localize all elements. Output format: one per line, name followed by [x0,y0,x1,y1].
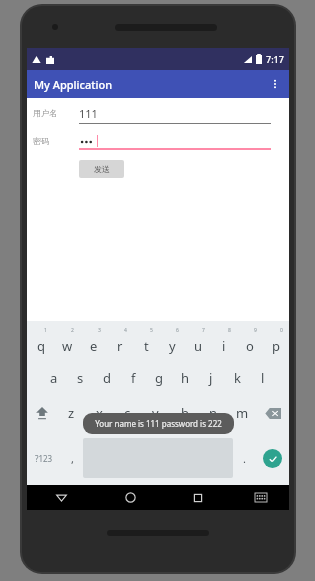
button[interactable]: c [113,395,141,431]
button[interactable]: v [141,395,170,431]
staticText: y [169,337,176,355]
staticText: p [272,337,280,355]
button[interactable]: 6 [159,327,185,361]
button[interactable]: Home [96,485,164,510]
button[interactable]: 7 [185,327,211,361]
button[interactable]: 1 [27,327,54,361]
staticText: 发送 [94,164,110,174]
staticText: s [77,369,84,387]
staticText: 6 [176,327,179,334]
button[interactable]: b [170,395,199,431]
staticText: w [62,337,73,355]
button[interactable]: g [146,361,172,395]
button[interactable]: 111 [79,106,271,124]
staticText: My Application [34,77,113,92]
staticText: q [37,337,45,355]
button[interactable]: 发送 [79,160,124,178]
staticText: 8 [228,327,231,334]
staticText: l [261,369,265,387]
button[interactable]: f [120,361,146,395]
staticText: 3 [98,327,101,334]
button[interactable]: ?123 [27,431,61,485]
staticText: v [152,404,159,422]
staticText: a [50,369,58,387]
button[interactable]: l [250,361,276,395]
staticText: 用户名 [33,108,79,118]
staticText: b [181,404,189,422]
staticText: g [155,369,163,387]
staticText: z [68,404,75,422]
staticText: j [209,369,213,387]
staticText: x [96,404,103,422]
button[interactable]: x [85,395,113,431]
staticText: n [209,404,218,422]
staticText: ?123 [35,453,53,464]
staticText: , [71,451,74,466]
button[interactable]: Back [27,485,96,510]
button[interactable]: a [40,361,67,395]
button[interactable]: Backspace [257,395,289,431]
staticText: m [236,404,249,422]
staticText: . [243,451,246,466]
button[interactable]: h [172,361,198,395]
staticText: r [117,337,123,355]
button[interactable]: d [94,361,120,395]
staticText: h [181,369,190,387]
button[interactable]: , [61,431,83,485]
button[interactable]: Enter [255,431,289,485]
button[interactable]: Recents [164,485,232,510]
staticText: 1 [44,327,47,334]
staticText: u [194,337,203,355]
button[interactable]: 9 [237,327,263,361]
button[interactable]: k [224,361,250,395]
staticText: c [124,404,131,422]
button[interactable]: Shift [27,395,57,431]
button[interactable]: 8 [211,327,237,361]
staticText: 7 [202,327,205,334]
staticText: t [144,337,149,355]
button[interactable]: s [67,361,94,395]
button[interactable]: 3 [81,327,107,361]
button[interactable]: j [198,361,224,395]
staticText: k [234,369,241,387]
staticText: 0 [280,327,283,334]
button[interactable]: 2 [54,327,81,361]
button[interactable]: n [199,395,228,431]
button[interactable]: m [228,395,257,431]
staticText: 2 [71,327,74,334]
button[interactable]: 0 [263,327,289,361]
staticText: d [103,369,111,387]
staticText: 9 [254,327,257,334]
staticText: 5 [150,327,153,334]
button[interactable] [79,134,271,150]
staticText: 7:17 [266,53,284,65]
button[interactable]: More options [265,74,285,94]
button[interactable]: . [233,431,255,485]
staticText: Your name is 111 password is 222 [95,418,222,429]
staticText: f [131,369,136,387]
staticText: 4 [124,327,127,334]
staticText: e [90,337,98,355]
staticText: 111 [79,106,98,121]
staticText: i [222,337,226,355]
button[interactable]: Switch keyboard [232,485,289,510]
button[interactable]: My Application [27,70,289,98]
button[interactable]: z [57,395,85,431]
staticText: 密码 [33,136,79,146]
staticText: o [246,337,254,355]
button[interactable]: 4 [107,327,133,361]
button[interactable]: 5 [133,327,159,361]
